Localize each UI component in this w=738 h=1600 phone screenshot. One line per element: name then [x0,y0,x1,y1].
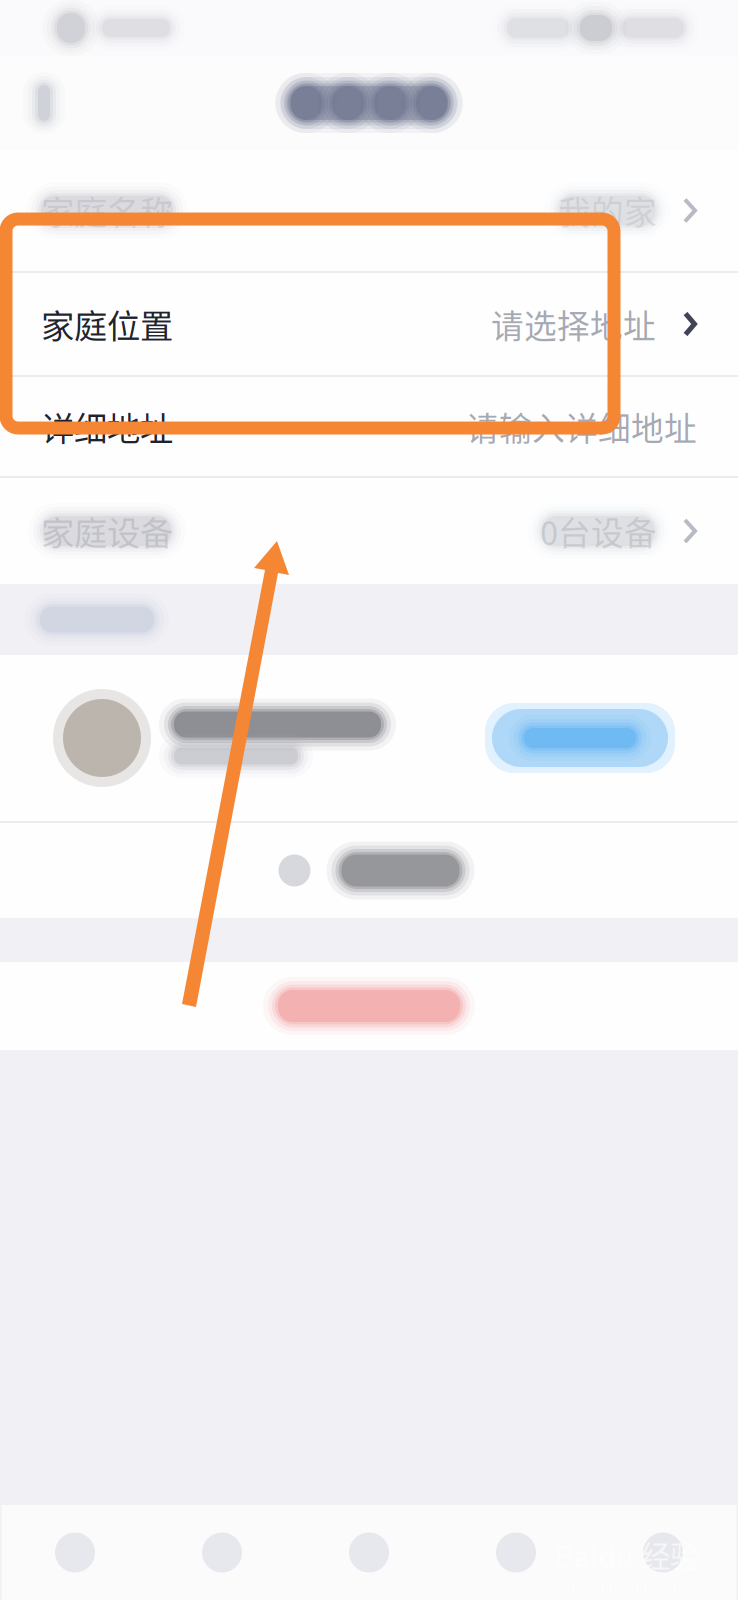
staticText: 家庭设备 [41,507,173,555]
button[interactable]: Tab [589,1505,736,1600]
button[interactable] [0,962,738,1050]
staticText: 请选择地址 [491,300,656,348]
button[interactable]: 家庭设备 [0,478,738,584]
button[interactable]: 家庭位置 [0,273,738,375]
staticText: 家庭位置 [41,300,173,348]
button[interactable]: Tab [1,1505,148,1600]
button[interactable]: 详细地址 [0,377,738,476]
staticText: 我的家 [558,187,657,234]
staticText: 详细地址 [41,402,173,451]
button[interactable]: 家庭名称 [0,150,738,271]
button[interactable]: Tab [148,1505,295,1600]
staticText: Baidu 经验 [554,1533,699,1576]
staticText: 请输入详细地址 [466,403,697,450]
button[interactable] [0,823,738,918]
button[interactable]: Back [0,59,78,147]
button[interactable]: Tab [295,1505,442,1600]
button[interactable] [0,655,738,821]
staticText: 家庭名称 [41,186,173,235]
staticText: 0台设备 [540,507,657,555]
button[interactable]: Tab [442,1505,589,1600]
